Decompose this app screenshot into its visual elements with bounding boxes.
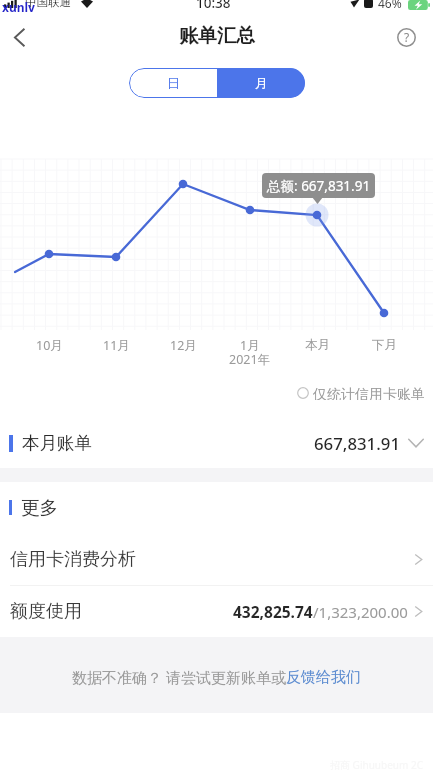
staticText: 432,825.74 <box>233 601 313 622</box>
staticText: 仅统计信用卡账单 <box>313 386 425 400</box>
staticText: 本月 <box>305 337 330 353</box>
button[interactable]: 月 <box>217 68 305 98</box>
staticText: 日 <box>167 75 180 91</box>
staticText: 信用卡消费分析 <box>10 548 136 571</box>
staticText: 2021年 <box>229 351 271 368</box>
button[interactable]: 信用卡消费分析 <box>0 533 433 585</box>
staticText: 中国联通 <box>25 0 71 9</box>
staticText: 下月 <box>372 337 397 353</box>
button[interactable]: 仅统计信用卡账单 <box>293 382 429 404</box>
button[interactable]: 日 <box>129 68 217 98</box>
staticText: 11月 <box>103 337 130 354</box>
staticText: 反馈给我们 <box>286 668 361 687</box>
staticText: 10月 <box>36 337 63 354</box>
staticText: 额度使用 <box>10 600 82 623</box>
staticText: 总额: 667,831.91 <box>267 177 371 195</box>
staticText: 更多 <box>21 496 58 519</box>
button[interactable]: 数据不准确？ 请尝试更新账单或 <box>72 667 361 687</box>
staticText: 1月 <box>240 337 260 354</box>
button[interactable]: Help <box>389 16 433 58</box>
button[interactable]: Back <box>0 16 44 58</box>
staticText: 招商 Gihuubeum 2C <box>330 758 423 770</box>
staticText: 数据不准确？ 请尝试更新账单或 <box>72 667 286 687</box>
staticText: ? <box>404 29 410 45</box>
staticText: /1,323,200.00 <box>313 602 408 622</box>
staticText: 12月 <box>170 337 197 354</box>
staticText: 账单汇总 <box>179 24 255 48</box>
staticText: xunlv <box>2 0 35 13</box>
staticText: 46% <box>378 0 402 9</box>
staticText: 667,831.91 <box>314 432 401 455</box>
staticText: 本月账单 <box>22 432 92 454</box>
button[interactable]: 额度使用 <box>0 586 433 637</box>
staticText: 月 <box>255 75 268 91</box>
staticText: 10:38 <box>196 0 231 8</box>
button[interactable]: 本月账单 <box>0 418 433 468</box>
